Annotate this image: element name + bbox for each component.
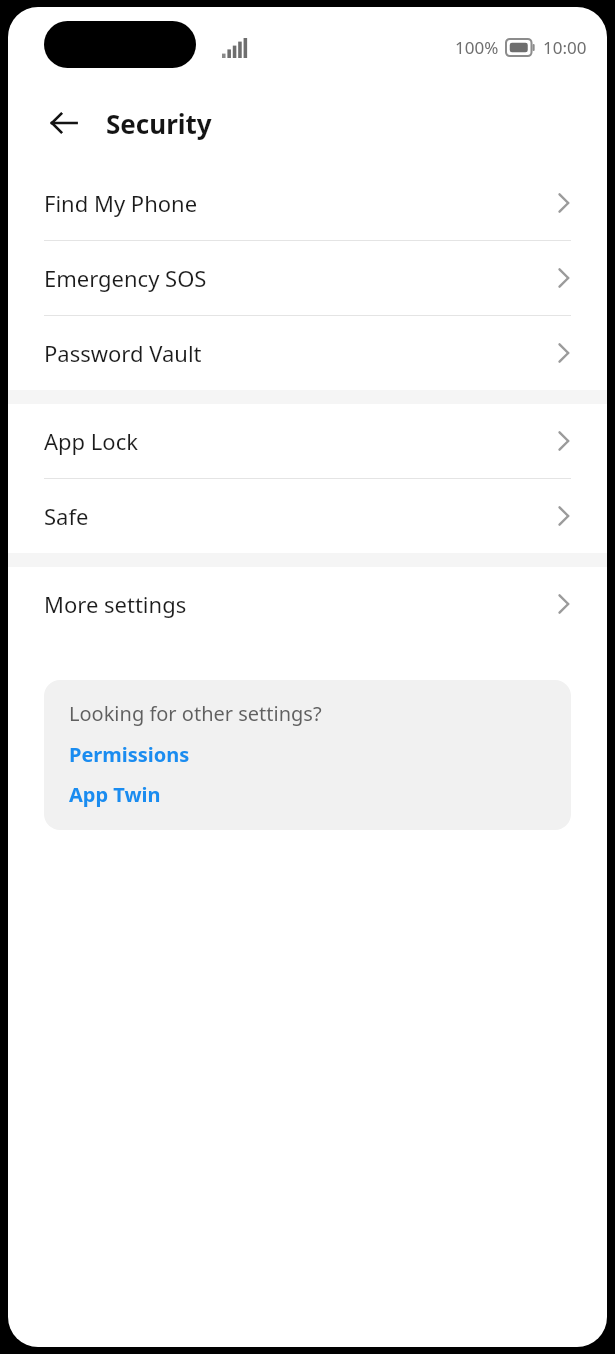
button[interactable]: App Twin xyxy=(69,781,161,808)
staticText: 100% xyxy=(455,36,499,59)
staticText: Emergency SOS xyxy=(44,263,207,293)
button[interactable]: Safe xyxy=(8,479,607,553)
staticText: 10:00 xyxy=(543,36,587,59)
staticText: App Lock xyxy=(44,426,138,456)
staticText: More settings xyxy=(44,589,187,619)
button[interactable]: Find My Phone xyxy=(8,166,607,240)
staticText: Looking for other settings? xyxy=(69,700,322,727)
button[interactable]: Emergency SOS xyxy=(8,241,607,315)
button[interactable]: Back xyxy=(36,95,92,151)
staticText: Find My Phone xyxy=(44,188,198,218)
staticText: Security xyxy=(106,106,212,141)
button[interactable]: App Lock xyxy=(8,404,607,478)
button[interactable]: More settings xyxy=(8,567,607,641)
button[interactable]: Password Vault xyxy=(8,316,607,390)
staticText: Safe xyxy=(44,501,89,531)
button[interactable]: Permissions xyxy=(69,741,190,768)
staticText: Password Vault xyxy=(44,338,202,368)
